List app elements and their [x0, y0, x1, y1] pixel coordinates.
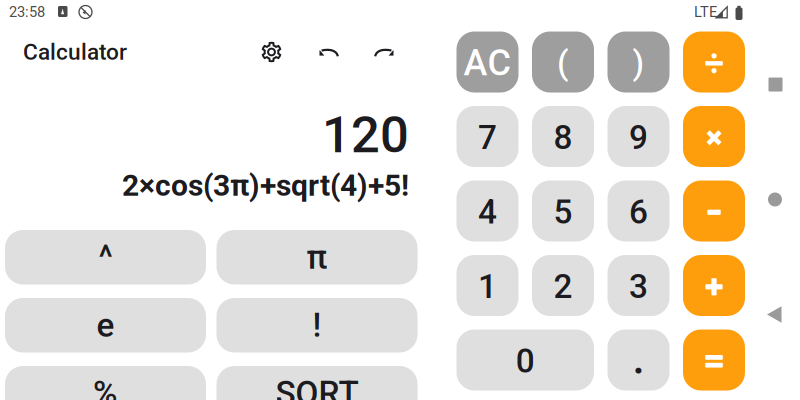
button[interactable]: SQRT — [216, 366, 417, 400]
button[interactable]: 7 — [456, 106, 518, 167]
button[interactable]: 5 — [532, 180, 594, 241]
staticText: 4 — [478, 192, 497, 232]
button[interactable]: 9 — [607, 106, 669, 167]
staticText: 7 — [478, 118, 497, 157]
button[interactable]: AC — [456, 31, 518, 92]
button[interactable]: 3 — [607, 255, 669, 316]
button[interactable]: 2 — [532, 255, 594, 316]
button[interactable]: Minus — [683, 180, 745, 241]
button[interactable]: Home — [752, 176, 798, 222]
staticText: 3 — [629, 267, 648, 306]
staticText: 2×cos(3π)+sqrt(4)+5! — [122, 168, 409, 203]
button[interactable]: ) — [607, 31, 669, 92]
button[interactable]: Multiply — [683, 106, 745, 167]
button[interactable]: ( — [532, 31, 594, 92]
button[interactable]: 6 — [607, 180, 669, 241]
button[interactable]: Equals — [683, 329, 745, 390]
button[interactable]: . — [607, 329, 669, 390]
staticText: 0 — [516, 341, 535, 381]
button[interactable]: Plus — [683, 255, 745, 316]
button[interactable]: Recents — [752, 61, 798, 107]
button[interactable]: Divide — [683, 31, 745, 92]
staticText: 23:58 — [9, 3, 45, 21]
button[interactable]: 1 — [456, 255, 518, 316]
button[interactable]: π — [216, 230, 417, 284]
staticText: SQRT — [275, 374, 358, 400]
staticText: 1 — [478, 267, 497, 306]
staticText: Calculator — [23, 39, 127, 65]
staticText: 5 — [553, 192, 572, 232]
button[interactable]: 0 — [456, 329, 594, 390]
staticText: π — [306, 238, 327, 277]
staticText: . — [632, 333, 644, 384]
staticText: 6 — [629, 192, 648, 232]
staticText: LTE — [694, 3, 717, 21]
button[interactable]: Undo — [310, 34, 346, 70]
staticText: ^ — [98, 238, 112, 277]
button[interactable]: e — [5, 298, 206, 352]
staticText: % — [93, 374, 118, 400]
button[interactable]: Redo — [367, 34, 403, 70]
button[interactable]: 8 — [532, 106, 594, 167]
button[interactable]: Settings — [253, 34, 289, 70]
staticText: AC — [463, 42, 511, 84]
button[interactable]: % — [5, 366, 206, 400]
staticText: e — [96, 306, 114, 345]
staticText: 120 — [322, 105, 409, 165]
staticText: 2 — [553, 267, 572, 306]
staticText: ) — [632, 43, 644, 83]
staticText: ! — [312, 306, 321, 345]
button[interactable]: ^ — [5, 230, 206, 284]
button[interactable]: 4 — [456, 180, 518, 241]
button[interactable]: Back — [751, 291, 797, 337]
staticText: 9 — [629, 118, 648, 157]
staticText: ( — [557, 43, 569, 83]
staticText: 8 — [553, 118, 572, 157]
button[interactable]: ! — [216, 298, 417, 352]
